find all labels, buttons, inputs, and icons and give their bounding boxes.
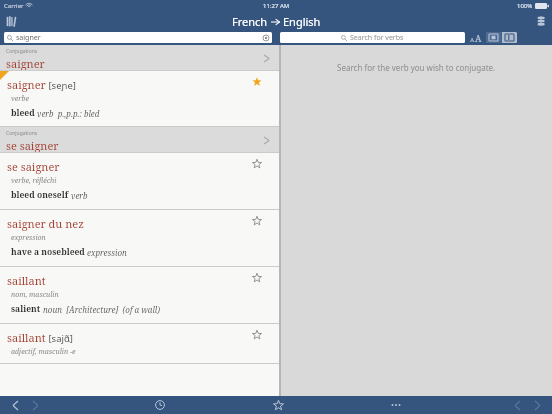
- button[interactable]: Split pane: [502, 32, 517, 43]
- staticText: Carrier: [4, 2, 24, 10]
- staticText: Conjugations: [6, 48, 38, 55]
- button[interactable]: Search for verbs: [280, 32, 465, 43]
- button[interactable]: se saigner: [0, 153, 279, 210]
- button[interactable]: Single pane: [486, 32, 501, 43]
- button[interactable]: saillant: [0, 267, 279, 324]
- staticText: se saigner: [6, 138, 59, 153]
- staticText: Conjugations: [6, 130, 38, 137]
- staticText: expression: [85, 247, 127, 258]
- button[interactable]: saigner du nez: [0, 210, 279, 267]
- staticText: verbe: [11, 94, 29, 104]
- button[interactable]: saigner: [4, 32, 272, 43]
- button[interactable]: Text size: [469, 32, 483, 44]
- button[interactable]: Add favourite: [252, 216, 262, 226]
- staticText: salient: [11, 303, 41, 315]
- staticText: A: [475, 32, 482, 44]
- staticText: saillant: [7, 273, 46, 288]
- button[interactable]: More: [388, 397, 404, 413]
- button[interactable]: Forward: [28, 398, 42, 412]
- button[interactable]: Conjugations: [0, 127, 279, 153]
- button[interactable]: Add favourite: [252, 159, 262, 169]
- button[interactable]: Next: [530, 398, 544, 412]
- button[interactable]: Add favourite: [252, 273, 262, 283]
- staticText: 11:27 AM: [263, 2, 290, 10]
- button[interactable]: Previous: [510, 398, 524, 412]
- staticText: saigner: [7, 77, 46, 92]
- staticText: verb: [69, 190, 88, 201]
- button[interactable]: Remove favourite: [252, 77, 262, 87]
- staticText: English: [283, 14, 321, 29]
- staticText: French: [232, 14, 268, 29]
- button[interactable]: History: [152, 397, 168, 413]
- staticText: A: [470, 36, 475, 44]
- staticText: [sajɑ̃]: [46, 332, 73, 345]
- staticText: have a nosebleed: [11, 246, 85, 258]
- staticText: noun [Architecture] (of a wall): [41, 304, 161, 315]
- staticText: [seɲe]: [46, 79, 76, 92]
- staticText: verb p.,p.p.: bled: [35, 108, 100, 119]
- staticText: saigner: [6, 56, 45, 71]
- staticText: bleed oneself: [11, 189, 69, 201]
- staticText: adjectif, masculin -e: [11, 347, 76, 357]
- staticText: verbe, réfléchi: [11, 176, 57, 186]
- button[interactable]: saillant: [0, 324, 279, 364]
- staticText: saillant: [7, 330, 46, 345]
- button[interactable]: Favourites: [270, 397, 286, 413]
- staticText: se saigner: [7, 159, 60, 174]
- button[interactable]: saigner: [0, 71, 279, 127]
- button[interactable]: Settings: [533, 13, 549, 29]
- button[interactable]: Add favourite: [252, 330, 262, 340]
- staticText: expression: [11, 233, 46, 243]
- button[interactable]: Conjugations: [0, 45, 279, 71]
- staticText: Search for verbs: [350, 33, 404, 43]
- button[interactable]: Back: [8, 398, 22, 412]
- button[interactable]: Library: [3, 13, 19, 29]
- staticText: 100%: [517, 2, 533, 10]
- staticText: saigner: [16, 33, 41, 43]
- staticText: Search for the verb you wish to conjugat…: [337, 62, 496, 73]
- staticText: nom, masculin: [11, 290, 59, 300]
- staticText: bleed: [11, 107, 35, 119]
- staticText: saigner du nez: [7, 216, 84, 231]
